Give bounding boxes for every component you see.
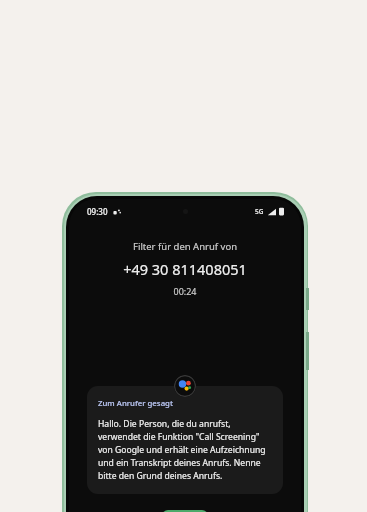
button[interactable]: Google Assistant: [174, 375, 196, 397]
staticText: 00:24: [69, 285, 301, 297]
staticText: 09:30: [87, 206, 108, 217]
staticText: Hallo. Die Person, die du anrufst, verwe…: [98, 418, 272, 482]
staticText: +49 30 811408051: [69, 259, 301, 279]
staticText: Filter für den Anruf von: [69, 240, 301, 253]
button[interactable]: Anruf annehmen: [162, 510, 208, 512]
staticText: Zum Anrufer gesagt: [98, 398, 173, 409]
staticText: 5G: [255, 207, 264, 216]
button[interactable]: Zum Anrufer gesagt: [87, 386, 283, 494]
